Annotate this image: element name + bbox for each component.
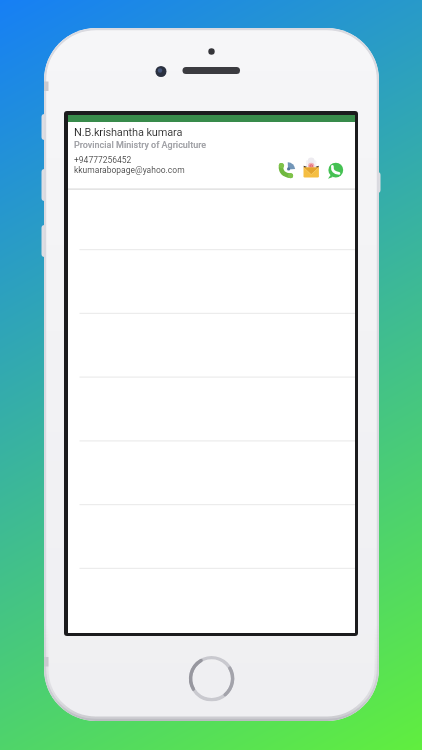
staticText: N.B.krishantha kumara bbox=[74, 126, 183, 139]
button[interactable]: kkumarabopage@yahoo.com bbox=[74, 165, 185, 175]
button[interactable] bbox=[278, 161, 296, 179]
staticText: Provincial Ministry of Agriculture bbox=[74, 140, 207, 151]
button[interactable] bbox=[327, 161, 345, 179]
button[interactable] bbox=[302, 161, 320, 179]
button[interactable]: +94777256452 bbox=[74, 155, 132, 165]
